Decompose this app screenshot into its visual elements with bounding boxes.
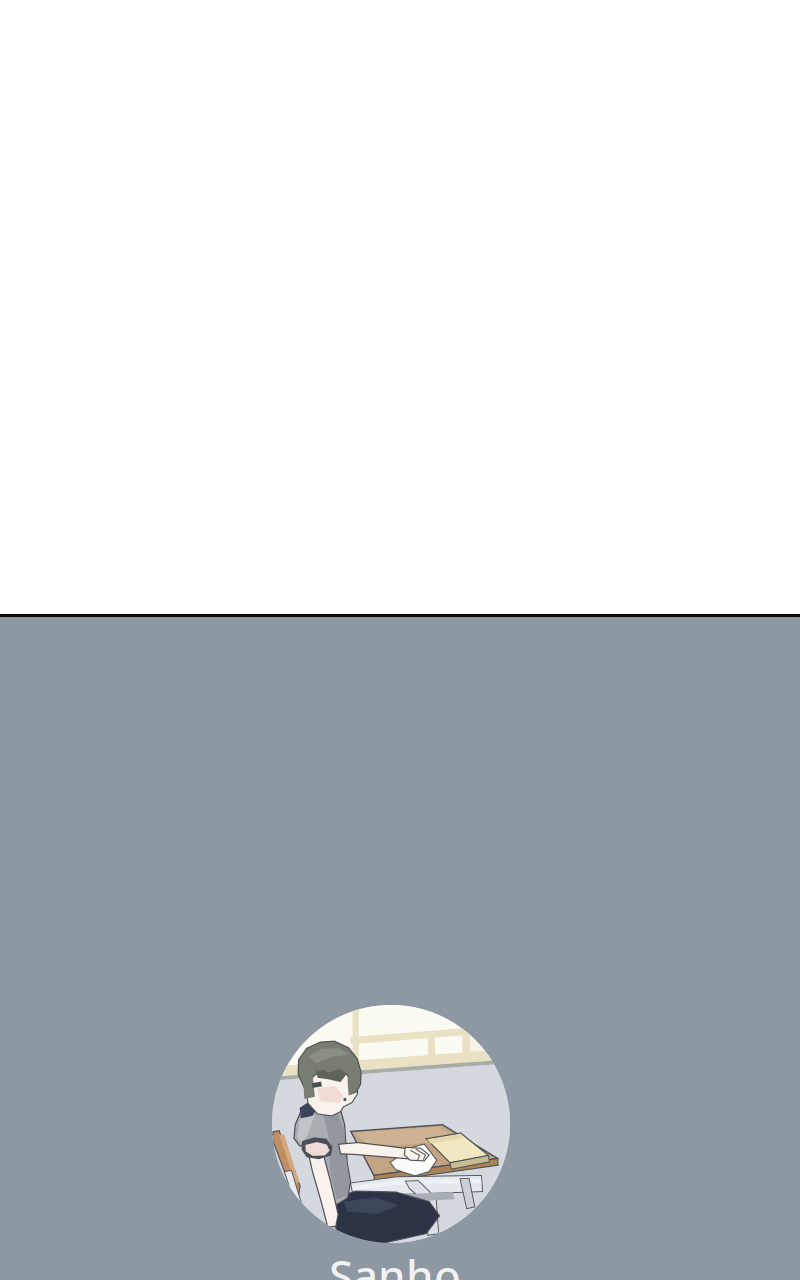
staticText: Sanho [329, 1246, 461, 1280]
